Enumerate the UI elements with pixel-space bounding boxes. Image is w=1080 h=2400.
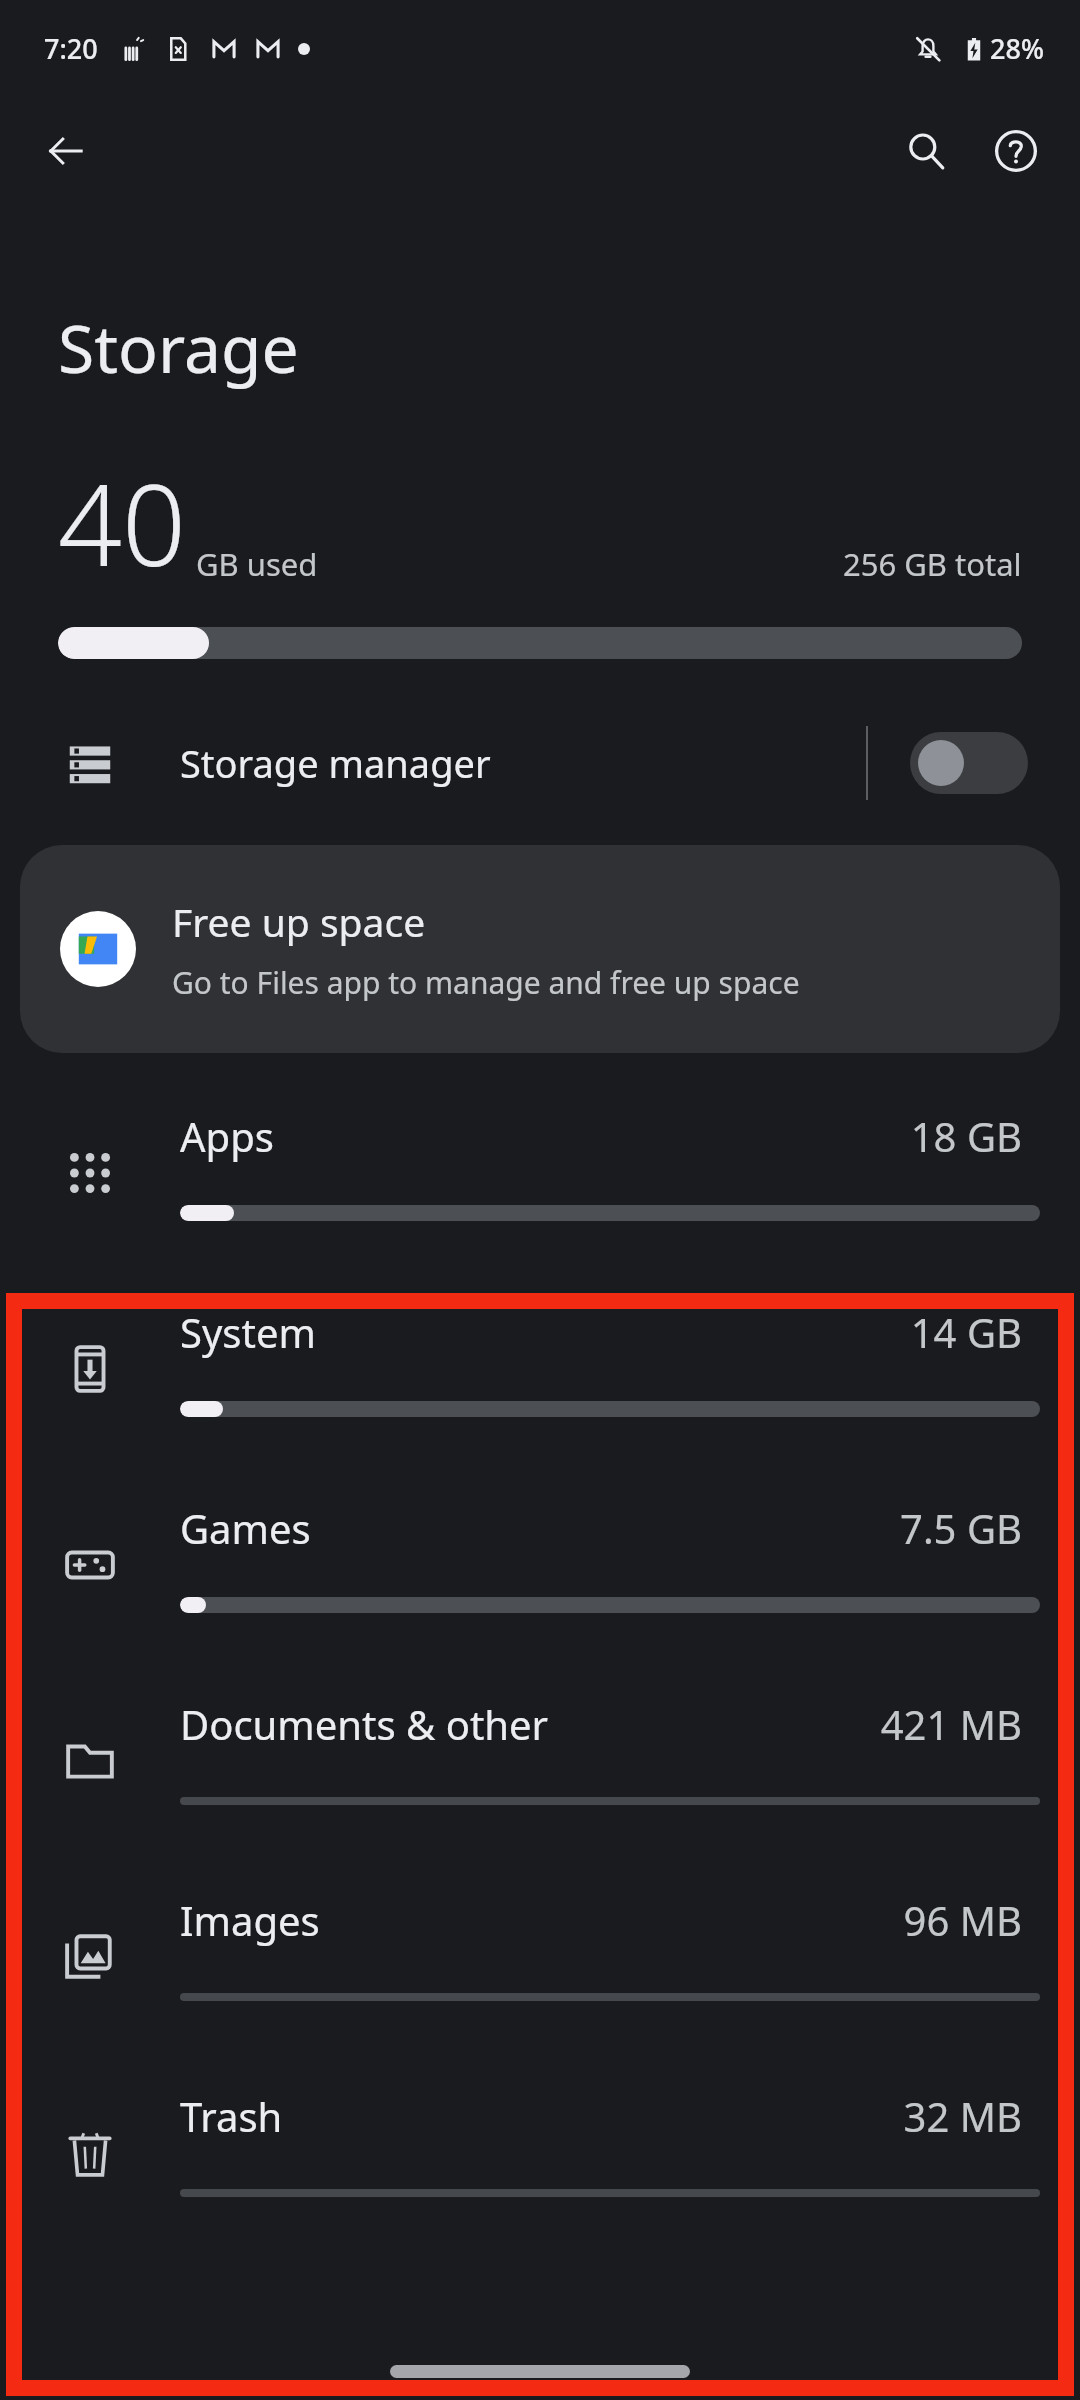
staticText: Go to Files app to manage and free up sp… (172, 962, 800, 1003)
button[interactable]: Storage manager toggle (910, 732, 1028, 794)
staticText: 32 MB (903, 2089, 1022, 2143)
staticText: 7:20 (44, 30, 98, 67)
button[interactable]: Free up space (20, 845, 1060, 1053)
staticText: Games (180, 1501, 311, 1555)
button[interactable]: Help (978, 113, 1054, 189)
staticText: Storage manager (180, 737, 491, 789)
button[interactable]: Documents & other (0, 1663, 1080, 1859)
staticText: Apps (180, 1109, 274, 1163)
staticText: 7.5 GB (900, 1501, 1022, 1555)
staticText: Images (180, 1893, 320, 1947)
staticText: 421 MB (880, 1697, 1022, 1751)
staticText: 256 GB total (843, 543, 1022, 585)
staticText: 18 GB (910, 1109, 1022, 1163)
staticText: GB used (196, 543, 318, 585)
staticText: 40 (58, 446, 186, 599)
staticText: System (180, 1305, 316, 1359)
button[interactable]: Search (888, 113, 964, 189)
button[interactable]: Back (30, 115, 102, 187)
staticText: Storage (58, 302, 299, 392)
button[interactable]: Trash (0, 2055, 1080, 2251)
button[interactable]: Apps (0, 1075, 1080, 1271)
staticText: Free up space (172, 895, 426, 948)
staticText: 96 MB (903, 1893, 1022, 1947)
button[interactable]: System (0, 1271, 1080, 1467)
button[interactable]: Images (0, 1859, 1080, 2055)
staticText: Documents & other (180, 1697, 549, 1751)
button[interactable]: Storage manager (0, 707, 1080, 819)
staticText: Trash (180, 2089, 283, 2143)
staticText: 14 GB (910, 1305, 1022, 1359)
staticText: 28% (990, 30, 1044, 67)
button[interactable]: Games (0, 1467, 1080, 1663)
